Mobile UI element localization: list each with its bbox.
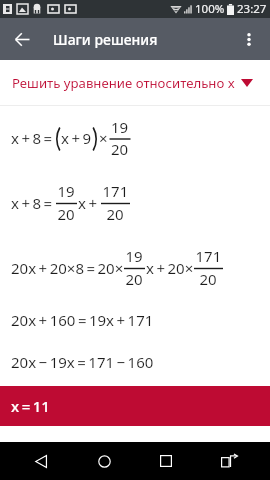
- button[interactable]: Recent apps: [144, 442, 188, 480]
- staticText: 23:27: [237, 1, 267, 17]
- staticText: x = 11: [11, 396, 50, 416]
- button[interactable]: Rotate screen: [207, 442, 251, 480]
- button[interactable]: Home: [82, 442, 126, 480]
- button[interactable]: x = 11: [0, 386, 270, 426]
- button[interactable]: Решить уравнение относительно x: [0, 60, 270, 105]
- button[interactable]: Back: [19, 442, 63, 480]
- staticText: Шаги решения: [53, 30, 158, 49]
- staticText: Решить уравнение относительно x: [12, 74, 235, 92]
- button[interactable]: More options: [232, 23, 265, 56]
- button[interactable]: Back: [6, 23, 39, 56]
- staticText: 100%: [195, 1, 225, 17]
